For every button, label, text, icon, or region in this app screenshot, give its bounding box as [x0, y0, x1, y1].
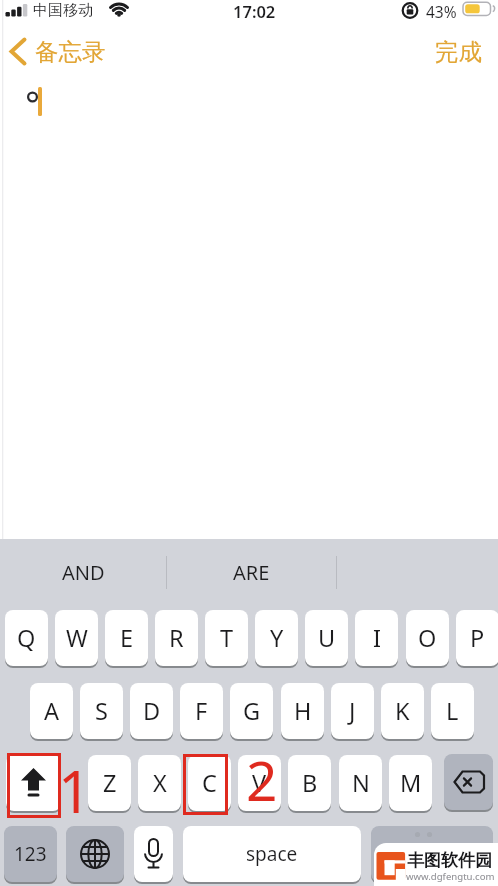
- staticText: www.dgfengtu.com: [406, 870, 495, 883]
- staticText: space: [246, 841, 298, 867]
- staticText: J: [349, 695, 356, 727]
- staticText: 1: [58, 751, 86, 813]
- staticText: U: [318, 622, 336, 654]
- button[interactable]: C: [188, 755, 231, 811]
- button[interactable]: P: [456, 610, 498, 666]
- button[interactable]: X: [138, 755, 181, 811]
- button[interactable]: U: [305, 610, 348, 666]
- staticText: K: [395, 695, 410, 727]
- button[interactable]: N: [339, 755, 382, 811]
- button[interactable]: I: [355, 610, 398, 666]
- staticText: 17:02: [233, 0, 276, 22]
- staticText: 丰图软件园: [407, 850, 492, 871]
- button[interactable]: Z: [88, 755, 131, 811]
- staticText: N: [352, 767, 370, 799]
- button[interactable]: ARE: [167, 556, 335, 589]
- staticText: P: [470, 622, 485, 654]
- staticText: 43%: [426, 1, 457, 22]
- button[interactable]: [6, 755, 61, 811]
- button[interactable]: [66, 826, 124, 882]
- staticText: 备忘录: [35, 37, 106, 67]
- staticText: O: [418, 622, 437, 654]
- staticText: 123: [14, 841, 47, 867]
- staticText: 2: [246, 742, 278, 804]
- staticText: 完成: [435, 37, 482, 67]
- button[interactable]: M: [389, 755, 432, 811]
- button[interactable]: [134, 826, 173, 882]
- staticText: Y: [270, 622, 284, 654]
- button[interactable]: 备忘录: [35, 37, 106, 67]
- button[interactable]: space: [183, 826, 361, 882]
- staticText: H: [294, 695, 312, 727]
- button[interactable]: B: [288, 755, 331, 811]
- button[interactable]: O: [406, 610, 449, 666]
- staticText: W: [66, 622, 88, 654]
- button[interactable]: 完成: [435, 37, 482, 67]
- button[interactable]: V: [238, 755, 281, 811]
- button[interactable]: 123: [4, 826, 57, 882]
- button[interactable]: [371, 826, 493, 882]
- staticText: R: [169, 622, 184, 654]
- staticText: Z: [103, 767, 117, 799]
- button[interactable]: AND: [0, 556, 166, 589]
- staticText: S: [95, 695, 108, 727]
- staticText: F: [195, 695, 208, 727]
- staticText: AND: [62, 559, 105, 586]
- staticText: 中国移动: [33, 1, 93, 20]
- staticText: I: [373, 622, 381, 654]
- button[interactable]: S: [80, 683, 123, 739]
- staticText: Q: [17, 622, 36, 654]
- button[interactable]: G: [230, 683, 273, 739]
- staticText: E: [120, 622, 134, 654]
- button[interactable]: F: [180, 683, 223, 739]
- button[interactable]: Y: [255, 610, 298, 666]
- staticText: G: [243, 695, 261, 727]
- button[interactable]: [444, 754, 493, 810]
- staticText: B: [302, 767, 318, 799]
- button[interactable]: E: [105, 610, 148, 666]
- button[interactable]: D: [130, 683, 173, 739]
- staticText: C: [202, 767, 217, 799]
- staticText: V: [252, 767, 267, 799]
- staticText: M: [400, 767, 422, 799]
- button[interactable]: 丰图软件园: [407, 850, 492, 871]
- button[interactable]: R: [155, 610, 198, 666]
- staticText: X: [153, 767, 167, 799]
- staticText: ARE: [233, 559, 270, 586]
- button[interactable]: J: [331, 683, 374, 739]
- button[interactable]: W: [55, 610, 98, 666]
- button[interactable]: T: [205, 610, 248, 666]
- button[interactable]: L: [431, 683, 474, 739]
- button[interactable]: A: [30, 683, 73, 739]
- staticText: L: [446, 695, 459, 727]
- button[interactable]: K: [381, 683, 424, 739]
- button[interactable]: H: [281, 683, 324, 739]
- staticText: D: [143, 695, 161, 727]
- staticText: T: [220, 622, 234, 654]
- button[interactable]: Q: [5, 610, 48, 666]
- staticText: A: [44, 695, 60, 727]
